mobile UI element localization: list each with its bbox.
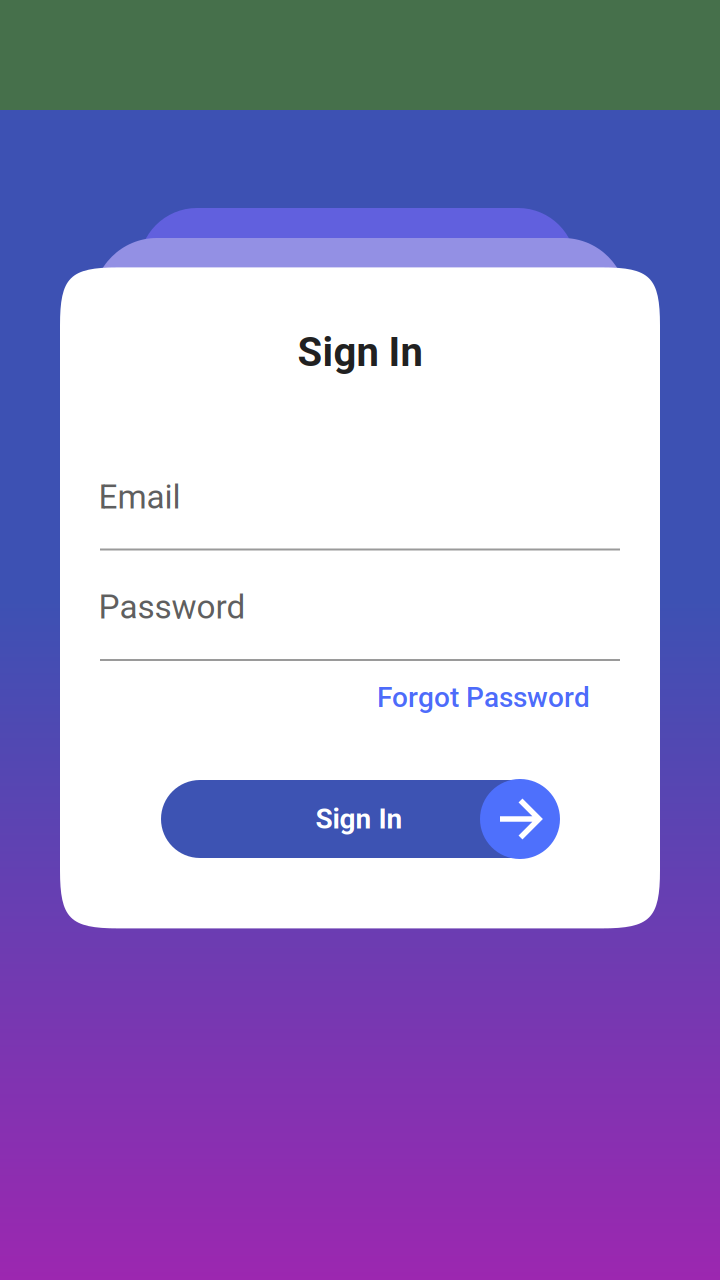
staticText: Sign In <box>297 329 422 376</box>
button[interactable]: Forgot Password <box>340 674 590 720</box>
staticText: Email <box>98 477 180 517</box>
button[interactable]: Sign In <box>161 780 560 860</box>
staticText: Forgot Password <box>377 681 590 714</box>
button[interactable]: Password <box>100 587 620 661</box>
button[interactable]: Email <box>100 476 620 550</box>
staticText: Password <box>98 587 245 627</box>
staticText: Sign In <box>315 803 402 835</box>
